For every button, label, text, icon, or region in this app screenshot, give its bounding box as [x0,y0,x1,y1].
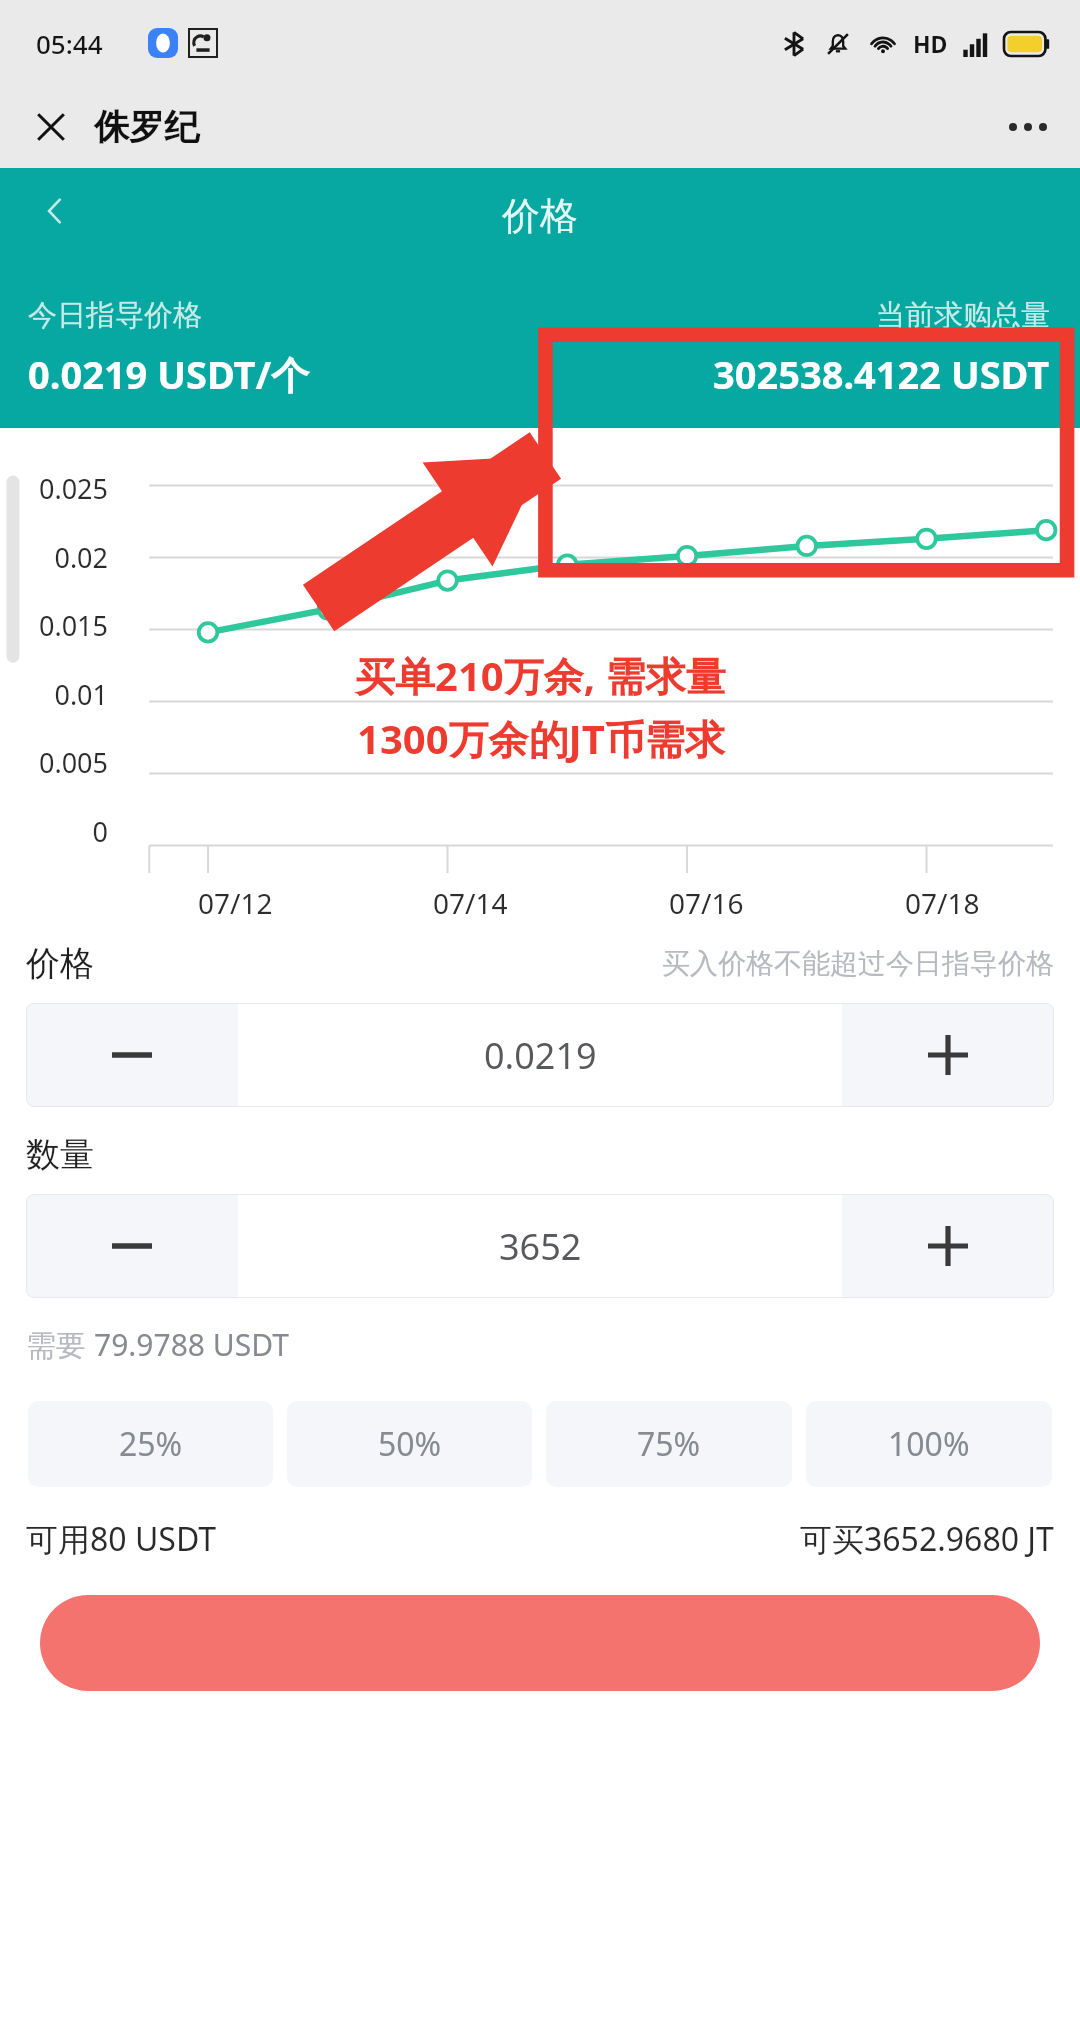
staticText: 79.9788 USDT [94,1324,289,1365]
staticText: 0 [16,813,108,850]
staticText: 05:44 [36,26,103,61]
button[interactable]: 25% [28,1401,273,1487]
staticText: 侏罗纪 [94,105,199,149]
staticText: 0.005 [16,744,108,781]
button[interactable]: Increase [842,1194,1054,1298]
staticText: 50% [378,1422,442,1466]
staticText: HD [913,28,948,59]
staticText: 价格 [26,942,94,985]
staticText: 0.01 [16,676,108,713]
staticText: 100% [888,1422,970,1466]
staticText: 25% [119,1422,183,1466]
button[interactable]: Back [22,178,88,244]
staticText: 价格 [502,192,578,240]
staticText: 0.025 [16,470,108,507]
staticText: 302538.4122 USDT [713,348,1050,400]
button[interactable]: Increase [842,1003,1054,1107]
button[interactable]: 50% [287,1401,532,1487]
staticText: 0.0219 USDT/个 [28,348,310,400]
staticText: 1300万余的JT币需求 [357,711,725,766]
staticText: 75% [637,1422,701,1466]
button[interactable]: More options [998,97,1058,157]
button[interactable]: Decrease [26,1194,238,1298]
staticText: 买单210万余, 需求量 [355,648,726,703]
staticText: 需要 [26,1324,94,1365]
staticText: 0.02 [16,539,108,576]
staticText: 0.0219 [484,1031,597,1080]
staticText: 今日指导价格 [28,297,202,334]
button[interactable]: 100% [806,1401,1052,1487]
staticText: 0.015 [16,607,108,644]
button[interactable] [40,1595,1040,1691]
staticText: 07/16 [669,884,744,922]
staticText: 3652 [499,1222,582,1271]
button[interactable]: Decrease [26,1003,238,1107]
staticText: 07/12 [198,884,273,922]
staticText: 可买3652.9680 JT [800,1517,1054,1561]
button[interactable]: 75% [546,1401,792,1487]
staticText: 可用80 USDT [26,1517,217,1561]
staticText: 当前求购总量 [876,297,1050,334]
button[interactable]: Close [24,100,78,154]
staticText: 买入价格不能超过今日指导价格 [662,946,1054,981]
staticText: 数量 [26,1133,94,1176]
staticText: 07/14 [433,884,508,922]
staticText: 07/18 [905,884,980,922]
